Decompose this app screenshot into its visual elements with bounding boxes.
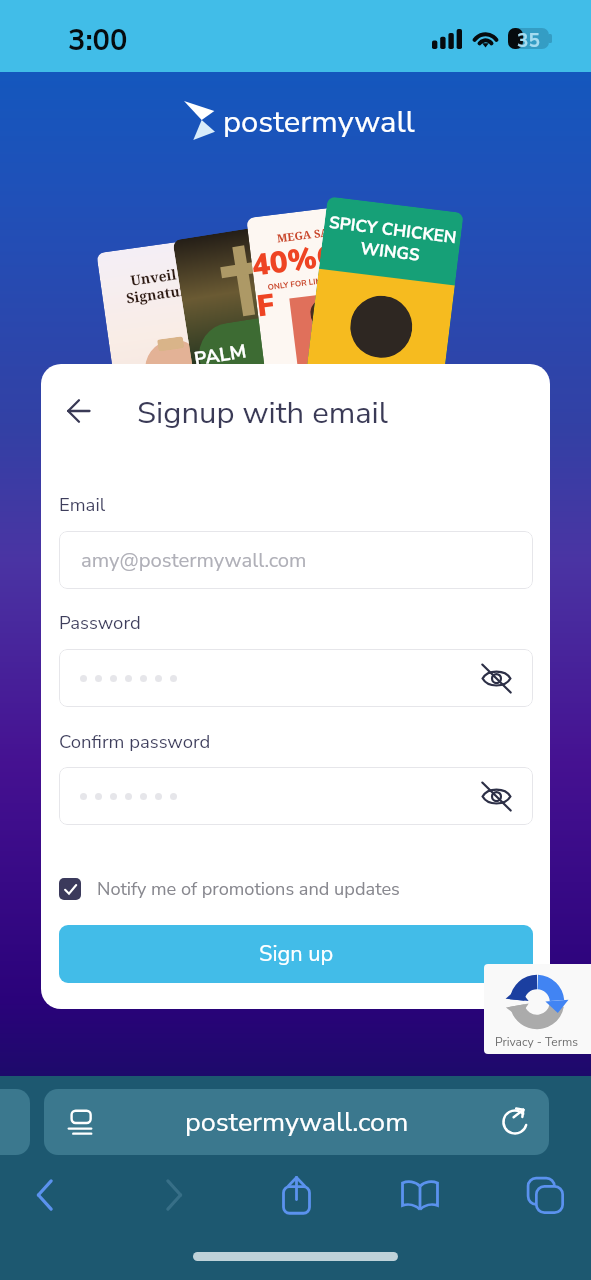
staticText: Password xyxy=(59,610,141,635)
staticText: Sign up xyxy=(259,939,334,969)
button[interactable]: Notify me of promotions and updates xyxy=(59,867,400,911)
button[interactable] xyxy=(0,1089,30,1155)
staticText: Signup with email xyxy=(137,392,388,434)
button[interactable]: Tabs xyxy=(517,1167,573,1223)
button[interactable]: Show password xyxy=(59,767,533,825)
staticText: Email xyxy=(59,492,106,517)
staticText: Notify me of promotions and updates xyxy=(97,877,400,902)
button[interactable]: Back xyxy=(55,388,101,434)
button[interactable]: Bookmarks xyxy=(392,1167,448,1223)
button[interactable]: Show password xyxy=(478,660,514,696)
button[interactable]: amy@postermywall.com xyxy=(59,531,533,589)
staticText: 35 xyxy=(517,28,540,49)
button[interactable]: Forward xyxy=(146,1167,202,1223)
button[interactable]: Share xyxy=(268,1167,324,1223)
staticText: PALM SUNDA xyxy=(192,328,316,398)
staticText: ONLY FOR LIMITED TIME! xyxy=(267,270,365,293)
button[interactable]: Show password xyxy=(59,649,533,707)
staticText: Confirm password xyxy=(59,729,211,754)
staticText: SPICY CHICKEN WINGS xyxy=(325,211,458,271)
button[interactable]: Page settings xyxy=(44,1089,549,1155)
button[interactable]: Show password xyxy=(478,778,514,814)
staticText: amy@postermywall.com xyxy=(81,546,307,574)
button[interactable]: Reload xyxy=(498,1105,532,1139)
staticText: 3:00 xyxy=(68,21,128,61)
staticText: 40%OFF xyxy=(250,231,381,327)
button[interactable]: Page settings xyxy=(63,1105,97,1139)
button[interactable]: Back xyxy=(17,1167,73,1223)
button[interactable]: Sign up xyxy=(59,925,533,983)
staticText: postermywall.com xyxy=(185,1104,409,1141)
staticText: Privacy - Terms xyxy=(495,1034,579,1050)
staticText: MEGA SALE xyxy=(276,222,344,245)
staticText: postermywall xyxy=(223,101,415,141)
button[interactable]: Privacy - Terms xyxy=(484,964,591,1054)
staticText: Unveil your Signature Sce xyxy=(122,258,223,307)
